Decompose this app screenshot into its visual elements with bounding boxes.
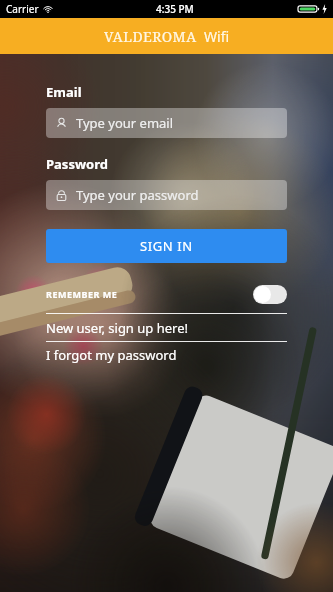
button[interactable]: Type your password [46, 180, 287, 210]
button[interactable]: Remember me toggle [253, 285, 287, 304]
staticText: I forgot my password [46, 346, 177, 364]
staticText: Email [46, 83, 82, 101]
staticText: 4:35 PM [156, 2, 194, 16]
button[interactable]: New user, sign up here! [46, 315, 287, 341]
staticText: Password [46, 155, 108, 173]
button[interactable]: REMEMBER ME [46, 281, 287, 307]
staticText: REMEMBER ME [46, 288, 118, 300]
staticText: VALDEROMA [104, 27, 197, 46]
staticText: Type your password [76, 186, 199, 204]
staticText: Type your email [76, 114, 174, 132]
staticText: Wifi [204, 27, 230, 46]
button[interactable]: Type your email [46, 108, 287, 138]
button[interactable]: I forgot my password [46, 342, 287, 368]
button[interactable]: SIGN IN [46, 229, 287, 263]
staticText: Carrier [6, 2, 39, 16]
staticText: SIGN IN [140, 237, 193, 255]
staticText: New user, sign up here! [46, 319, 188, 337]
